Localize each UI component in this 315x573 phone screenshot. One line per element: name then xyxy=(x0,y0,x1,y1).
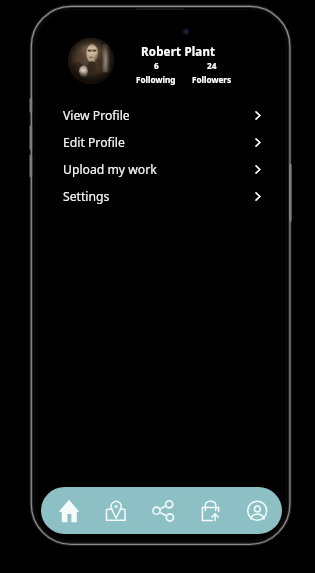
staticText: Robert Plant xyxy=(141,44,216,60)
button[interactable]: Places xyxy=(93,487,139,534)
button[interactable]: View Profile xyxy=(31,102,290,129)
button[interactable]: Home xyxy=(46,487,92,534)
button[interactable]: Settings xyxy=(31,183,290,210)
button[interactable]: Edit Profile xyxy=(31,129,290,156)
staticText: Settings xyxy=(63,188,110,205)
staticText: 24 xyxy=(207,60,217,71)
button[interactable]: Share xyxy=(140,487,186,534)
button[interactable]: Upload xyxy=(188,487,234,534)
staticText: Followers xyxy=(192,74,232,85)
staticText: Following xyxy=(136,74,176,85)
button[interactable]: Profile xyxy=(234,487,280,534)
staticText: View Profile xyxy=(63,107,130,124)
button[interactable]: Upload my work xyxy=(31,156,290,183)
staticText: Edit Profile xyxy=(63,134,125,151)
staticText: 6 xyxy=(154,60,159,71)
staticText: Upload my work xyxy=(63,161,157,178)
